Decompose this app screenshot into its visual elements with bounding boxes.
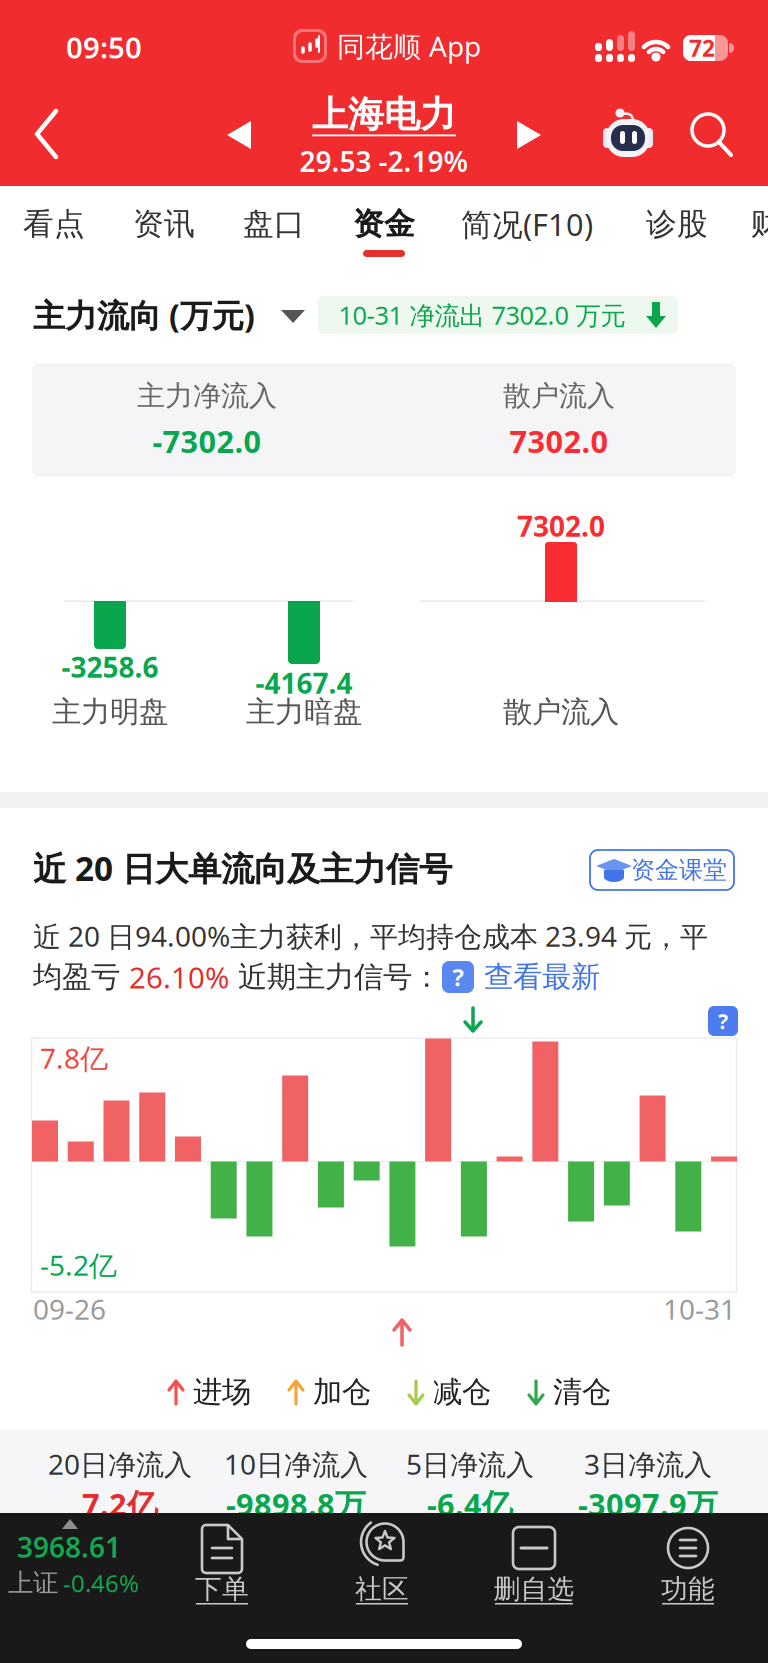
staticText: 近 20 日94.00%主力获利，平均持仓成本 23.94 元，平	[33, 917, 708, 955]
staticText: -4167.4	[255, 664, 352, 702]
button[interactable]: 资金课堂	[589, 849, 735, 891]
button[interactable]: Next stock	[499, 105, 559, 165]
button[interactable]: 删自选	[459, 1514, 609, 1610]
staticText: 5日净流入	[406, 1445, 534, 1483]
button[interactable]: 查看最新	[475, 959, 600, 995]
button[interactable]: Assistant	[593, 101, 663, 171]
button[interactable]: 诊股	[627, 184, 727, 264]
staticText: 7.8亿	[40, 1039, 108, 1077]
staticText: 减仓	[433, 1374, 491, 1410]
staticText: 7302.0	[517, 507, 605, 545]
staticText: 简况(F10)	[461, 204, 593, 244]
staticText: 散户流入	[503, 694, 619, 730]
staticText: 查看最新	[475, 959, 600, 995]
button[interactable]: 资金	[334, 184, 434, 264]
staticText: 看点	[23, 205, 85, 243]
staticText: 10-31 净流出 7302.0 万元	[338, 298, 625, 332]
staticText: 资金	[353, 205, 415, 243]
staticText: 加仓	[313, 1374, 371, 1410]
button[interactable]: Back	[15, 86, 75, 182]
staticText: ?	[452, 961, 463, 993]
staticText: 上海电力	[312, 92, 456, 136]
staticText: 3日净流入	[584, 1445, 712, 1483]
staticText: 26.10%	[129, 957, 229, 996]
staticText: 7302.0	[509, 421, 608, 461]
staticText: -5.2亿	[40, 1246, 117, 1284]
staticText: 09-26	[33, 1290, 106, 1328]
staticText: 诊股	[646, 205, 708, 243]
button[interactable]: 社区	[307, 1514, 457, 1610]
staticText: 均盈亏	[33, 959, 129, 995]
button[interactable]: Help	[703, 1001, 743, 1041]
staticText: 同花顺 App	[337, 27, 481, 65]
button[interactable]: 上海电力	[269, 93, 499, 179]
staticText: 7.2亿	[82, 1484, 158, 1524]
staticText: 盘口	[243, 205, 305, 243]
staticText: 下单	[195, 1573, 249, 1605]
button[interactable]: Select flow type	[271, 294, 315, 338]
staticText: -3097.9万	[578, 1484, 718, 1524]
button[interactable]: 下单	[147, 1514, 297, 1610]
staticText: 3968.61	[17, 1528, 121, 1566]
staticText: 主力明盘	[52, 694, 168, 730]
staticText: 主力净流入	[137, 379, 277, 413]
button[interactable]: 盘口	[224, 184, 324, 264]
button[interactable]: 简况(F10)	[452, 184, 602, 264]
staticText: 72	[689, 33, 715, 63]
staticText: 近 20 日大单流向及主力信号	[33, 846, 452, 890]
staticText: 29.53 -2.19%	[299, 142, 468, 180]
staticText: 功能	[661, 1573, 715, 1605]
staticText: 进场	[193, 1374, 251, 1410]
button[interactable]: 财	[716, 184, 768, 264]
staticText: 社区	[355, 1573, 409, 1605]
staticText: 10日净流入	[224, 1445, 368, 1483]
staticText: -3258.6	[61, 648, 158, 686]
staticText: 删自选	[493, 1573, 574, 1605]
staticText: -9898.8万	[226, 1484, 366, 1524]
button[interactable]: 资讯	[114, 184, 214, 264]
staticText: 20日净流入	[48, 1445, 192, 1483]
staticText: 财	[750, 205, 768, 243]
button[interactable]: 看点	[4, 184, 104, 264]
button[interactable]: Search	[682, 104, 742, 164]
staticText: 10-31	[663, 1290, 736, 1328]
button[interactable]: 3968.61	[0, 1514, 150, 1610]
staticText: 近期主力信号：	[229, 959, 441, 995]
staticText: -7302.0	[152, 421, 261, 461]
staticText: 09:50	[66, 27, 142, 66]
staticText: 资讯	[133, 205, 195, 243]
button[interactable]: Previous stock	[209, 105, 269, 165]
staticText: ?	[718, 1007, 728, 1035]
staticText: -6.4亿	[427, 1484, 513, 1524]
staticText: 主力暗盘	[246, 694, 362, 730]
staticText: -0.46%	[63, 1567, 139, 1599]
button[interactable]: About main force signals	[441, 960, 475, 994]
staticText: 上证	[8, 1567, 58, 1598]
staticText: 清仓	[553, 1374, 611, 1410]
staticText: 资金课堂	[631, 855, 727, 885]
staticText: 散户流入	[503, 379, 615, 413]
staticText: 主力流向 (万元)	[33, 294, 255, 336]
button[interactable]: 功能	[613, 1514, 763, 1610]
